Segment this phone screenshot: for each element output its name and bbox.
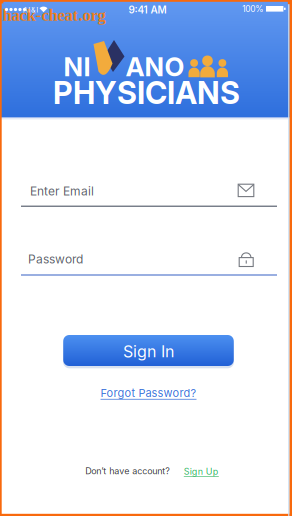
button[interactable]: Sign Up (184, 466, 219, 477)
staticText: Enter Email (30, 184, 94, 198)
staticText: Don’t have account? (85, 466, 170, 476)
staticText: Sign Up (184, 466, 219, 477)
staticText: hack-cheat.org (2, 6, 105, 24)
staticText: 100% (242, 4, 263, 14)
staticText: NI (63, 51, 90, 83)
button[interactable]: Password (0, 0, 292, 516)
button[interactable]: Enter Email (0, 0, 292, 516)
staticText: 9:41 AM (128, 4, 166, 16)
staticText: Sign In (123, 342, 174, 361)
staticText: ANO (125, 51, 184, 83)
button[interactable]: Sign In (63, 335, 234, 366)
staticText: Password (28, 252, 83, 266)
staticText: AT&T (23, 6, 40, 14)
staticText: PHYSICIANS (53, 74, 240, 111)
button[interactable]: Forgot Password? (100, 386, 196, 400)
staticText: Forgot Password? (100, 386, 196, 400)
